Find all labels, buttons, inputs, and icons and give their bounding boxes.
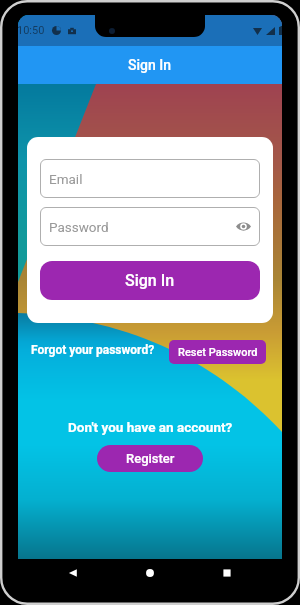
button[interactable]: Password [40, 207, 260, 246]
button[interactable]: Reset Password [169, 340, 266, 364]
button[interactable]: Register [97, 445, 203, 472]
staticText: Register [126, 451, 175, 466]
button[interactable]: Show password [236, 221, 251, 232]
staticText: Don't you have an account? [68, 419, 233, 435]
staticText: Sign In [125, 271, 175, 290]
staticText: Password [49, 219, 109, 235]
staticText: 10:50 [18, 24, 45, 37]
button[interactable]: Forgot your password? [31, 340, 155, 360]
staticText: Sign In [128, 57, 172, 73]
button[interactable]: Email [40, 159, 260, 198]
staticText: Email [49, 171, 83, 187]
staticText: Forgot your password? [31, 343, 155, 357]
button[interactable]: Home [144, 567, 156, 579]
staticText: Reset Password [178, 346, 258, 359]
button[interactable]: Sign In [40, 261, 260, 300]
button[interactable]: Recent apps [221, 567, 233, 579]
button[interactable]: Back [67, 567, 79, 579]
